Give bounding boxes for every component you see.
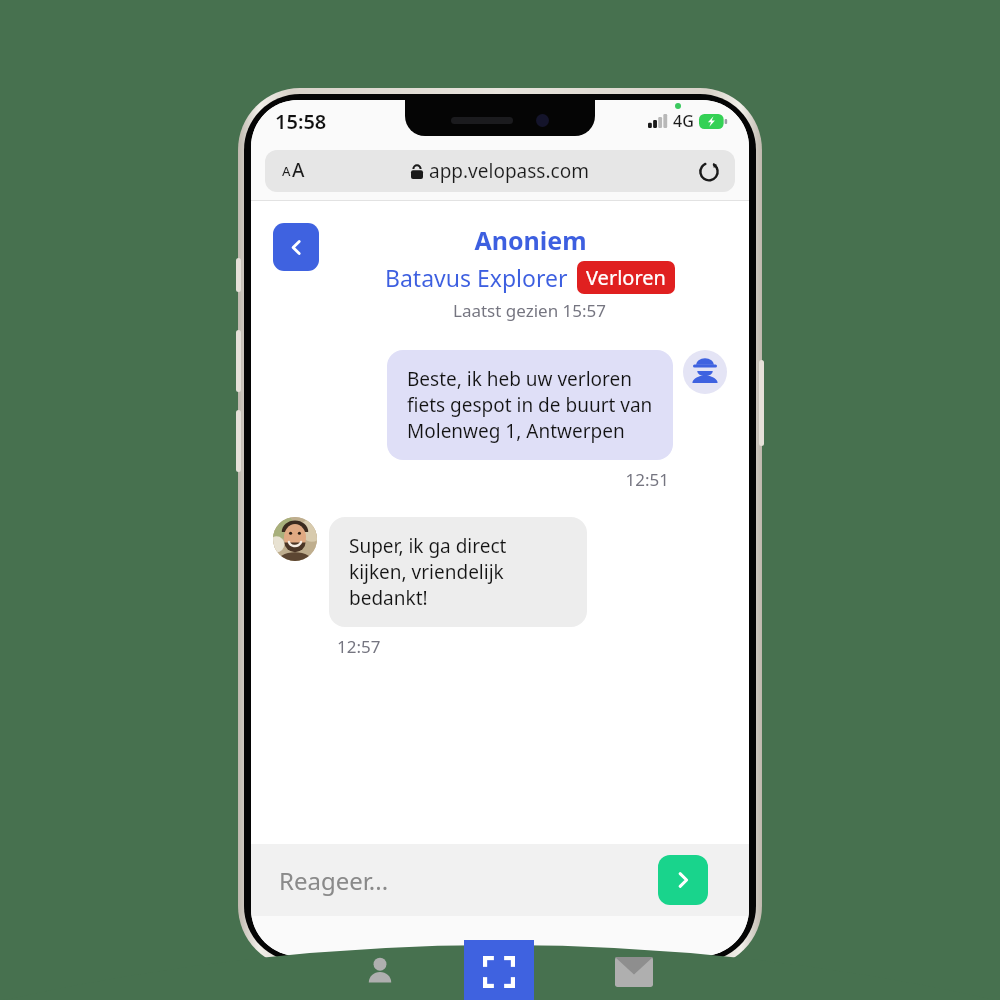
staticText: Beste, ik heb uw verloren fiets gespot i… <box>407 366 653 444</box>
staticText: Verloren <box>586 264 666 291</box>
staticText: Laatst gezien 15:57 <box>453 299 607 322</box>
button[interactable]: Verloren <box>586 264 666 291</box>
staticText: app.velopass.com <box>429 158 589 184</box>
button[interactable]: Messages <box>602 940 666 1000</box>
button[interactable]: Scan <box>464 940 534 1000</box>
button[interactable]: Profile <box>348 940 412 1000</box>
button[interactable]: Beste, ik heb uw verloren fiets gespot i… <box>407 366 653 444</box>
button[interactable]: Reload <box>697 159 721 183</box>
staticText: A <box>282 162 291 180</box>
staticText: 4G <box>673 110 694 132</box>
button[interactable]: Reageer... <box>279 864 389 897</box>
staticText: 12:51 <box>251 468 669 491</box>
staticText: Anoniem <box>474 223 587 257</box>
staticText: 15:58 <box>275 108 327 135</box>
button[interactable]: Send <box>658 855 708 905</box>
staticText: 12:57 <box>337 635 381 658</box>
staticText: Batavus Explorer <box>385 262 568 293</box>
button[interactable]: Back <box>273 223 319 271</box>
staticText: A <box>292 157 305 183</box>
staticText: Super, ik ga direct kijken, vriendelijk … <box>349 533 567 611</box>
button[interactable]: A <box>265 150 735 192</box>
button[interactable]: Super, ik ga direct kijken, vriendelijk … <box>349 533 567 611</box>
